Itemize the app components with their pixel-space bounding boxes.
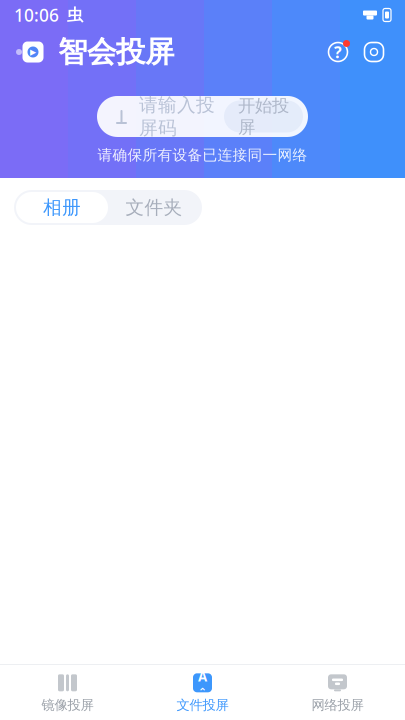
staticText: 镜像投屏 xyxy=(41,697,93,713)
staticText: 文件夹 xyxy=(125,196,182,219)
button[interactable]: 文件夹 xyxy=(108,192,200,223)
button[interactable]: 设置 xyxy=(359,37,389,67)
staticText: 网络投屏 xyxy=(311,697,363,713)
staticText: 开始投屏 xyxy=(238,95,289,138)
staticText: 10:06 xyxy=(14,3,59,26)
button[interactable]: 帮助 xyxy=(323,37,353,67)
staticText: 请输入投屏码 xyxy=(139,94,215,139)
button[interactable]: 开始投屏 xyxy=(224,100,303,132)
staticText: 相册 xyxy=(43,196,81,219)
button[interactable]: 网络投屏 xyxy=(270,665,405,720)
button[interactable]: A xyxy=(135,665,270,720)
staticText: 文件投屏 xyxy=(176,697,228,713)
staticText: ⌃ xyxy=(198,686,207,698)
button[interactable]: 相册 xyxy=(16,192,108,223)
staticText: ▶ xyxy=(30,47,36,57)
staticText: 智会投屏 xyxy=(58,34,174,70)
staticText: 请确保所有设备已连接同一网络 xyxy=(97,146,307,164)
staticText: A xyxy=(198,667,207,685)
staticText: ? xyxy=(334,41,342,63)
button[interactable]: 镜像投屏 xyxy=(0,665,135,720)
staticText: 虫 xyxy=(67,5,83,25)
